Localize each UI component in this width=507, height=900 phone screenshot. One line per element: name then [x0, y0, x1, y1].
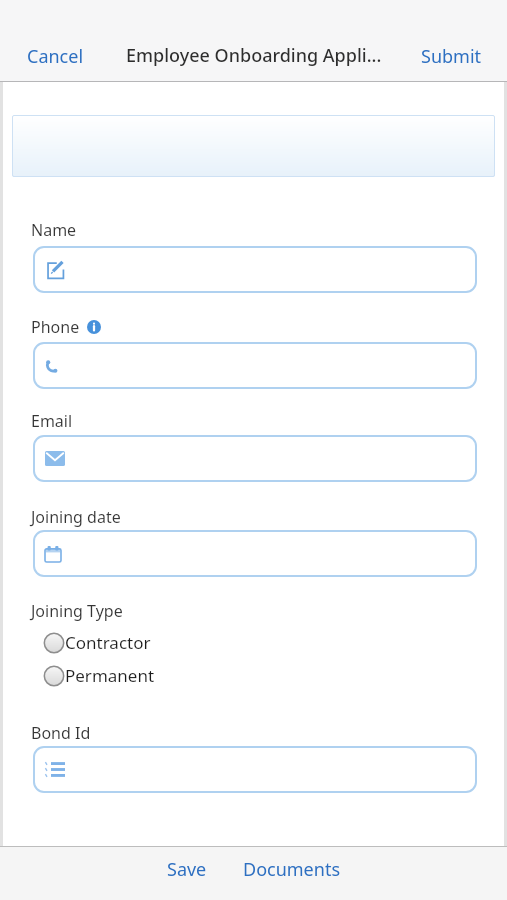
staticText: Permanent — [65, 664, 155, 687]
staticText: Phone — [31, 316, 80, 338]
staticText: Contractor — [65, 631, 151, 654]
staticText: Submit — [421, 44, 482, 69]
staticText: Employee Onboarding Appli... — [126, 43, 382, 68]
staticText: Name — [31, 219, 77, 241]
button[interactable]: Cancel — [27, 44, 84, 69]
button[interactable] — [33, 246, 477, 293]
button[interactable]: Submit — [421, 44, 482, 69]
button[interactable] — [33, 435, 477, 482]
button[interactable]: Permanent — [43, 664, 155, 687]
staticText: Bond Id — [31, 722, 91, 744]
button[interactable]: Documents — [243, 857, 341, 882]
staticText: Documents — [243, 857, 341, 882]
staticText: Save — [167, 857, 207, 882]
staticText: Email — [31, 410, 73, 432]
button[interactable]: Save — [167, 857, 207, 882]
button[interactable] — [33, 342, 477, 389]
staticText: Joining Type — [31, 600, 123, 622]
button[interactable] — [33, 530, 477, 577]
button[interactable] — [33, 746, 477, 793]
staticText: Cancel — [27, 44, 84, 69]
staticText: Joining date — [31, 506, 121, 528]
button[interactable]: Contractor — [43, 631, 151, 654]
